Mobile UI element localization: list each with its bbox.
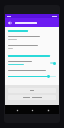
button[interactable] [8, 88, 56, 93]
button[interactable]: Home [28, 106, 36, 114]
button[interactable] [8, 95, 56, 100]
button[interactable] [8, 74, 56, 78]
button[interactable]: Toggle setting [50, 61, 56, 65]
button[interactable]: Back [13, 106, 21, 114]
button[interactable]: Toggle setting [8, 61, 56, 65]
button[interactable]: Recents [44, 106, 52, 114]
button[interactable]: Back [7, 20, 13, 26]
